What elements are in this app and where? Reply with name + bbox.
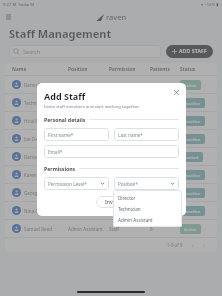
staticText: Add Staff	[44, 90, 86, 102]
button[interactable]: ADD STAFF	[166, 45, 213, 58]
button[interactable]: Admin Assistant	[113, 214, 182, 225]
staticText: Position*	[118, 181, 170, 187]
staticText: Position	[68, 66, 109, 73]
staticText: Admin	[109, 118, 150, 124]
staticText: Inactive	[184, 172, 201, 178]
staticText: 6	[150, 226, 180, 232]
staticText: Technician	[118, 206, 141, 212]
staticText: Name	[12, 66, 68, 73]
staticText: First name*	[48, 132, 105, 138]
button[interactable]: Director	[113, 192, 182, 203]
staticText: Nina Cross	[24, 208, 48, 214]
button[interactable]: First name*	[44, 128, 109, 141]
staticText: Inactive	[184, 118, 201, 124]
button[interactable]: Samuel Reed	[5, 220, 217, 237]
staticText: Director	[118, 195, 136, 201]
staticText: raven	[106, 12, 127, 22]
button[interactable]: Last name*	[114, 128, 179, 141]
staticText: 1-9 of 9	[167, 242, 183, 248]
button[interactable]: Demo Raven Health	[5, 76, 217, 93]
staticText: Staff	[109, 208, 150, 214]
staticText: Permissions	[44, 165, 76, 172]
staticText: Search	[23, 48, 41, 55]
staticText: Samuel Reed	[24, 226, 53, 232]
staticText: Director	[68, 118, 109, 124]
staticText: 9	[150, 190, 180, 196]
staticText: Joe Daniels	[24, 136, 48, 142]
button[interactable]: Search	[9, 45, 161, 58]
button[interactable]: Karen Patel	[5, 166, 217, 183]
staticText: Technician One	[24, 100, 57, 106]
staticText: Karen Patel	[24, 172, 49, 178]
button[interactable]: Denise Avery	[5, 148, 217, 165]
staticText: Administrator	[68, 82, 109, 88]
staticText: Admin	[109, 190, 150, 196]
staticText: Permission Level*	[48, 181, 100, 187]
staticText: Email*	[48, 149, 175, 155]
staticText: Staff	[109, 172, 150, 178]
button[interactable]: Joe Daniels	[5, 130, 217, 147]
staticText: Technician	[68, 100, 109, 106]
staticText: Permission	[109, 66, 150, 73]
staticText: Admin Assistant	[68, 226, 109, 232]
staticText: Staff Management	[9, 26, 112, 41]
staticText: Admin Assistant	[68, 154, 109, 160]
staticText: ADD STAFF	[179, 48, 207, 55]
staticText: Inactive	[184, 100, 201, 106]
button[interactable]: Email*	[44, 145, 179, 158]
button[interactable]: Permission Level*	[44, 177, 109, 190]
staticText: Inactive	[184, 136, 201, 142]
staticText: Technician	[68, 172, 109, 178]
staticText: Admin Assistant	[118, 217, 153, 223]
staticText: 12	[150, 82, 180, 88]
staticText: 2	[150, 172, 180, 178]
staticText: Invite	[105, 199, 119, 206]
staticText: Invited	[184, 154, 199, 160]
staticText: Technician	[68, 136, 109, 142]
staticText: 7	[150, 154, 180, 160]
staticText: Inactive	[184, 208, 201, 214]
staticText: Denise Avery	[24, 154, 53, 160]
staticText: Staff	[109, 100, 150, 106]
button[interactable]: Position*	[114, 177, 179, 190]
button[interactable]: George Mills	[5, 184, 217, 201]
button[interactable]: Close	[173, 89, 180, 96]
button[interactable]: Next page	[200, 242, 207, 249]
button[interactable]: Nina Cross	[5, 202, 217, 219]
staticText: ▾ • 58% ▮	[201, 2, 219, 8]
button[interactable]: Previous page	[189, 242, 196, 249]
staticText: Staff	[109, 226, 150, 232]
staticText: Active	[184, 226, 197, 232]
staticText: Staff	[109, 154, 150, 160]
staticText: 5	[150, 118, 180, 124]
button[interactable]: Technician	[113, 203, 182, 214]
button[interactable]: Invite	[96, 196, 128, 208]
staticText: Last name*	[118, 132, 175, 138]
staticText: Staff	[109, 136, 150, 142]
staticText: Personal details	[44, 116, 86, 123]
staticText: Demo Raven Health	[24, 82, 67, 88]
staticText: Inactive	[184, 190, 201, 196]
staticText: 3	[150, 136, 180, 142]
staticText: Admin	[109, 82, 150, 88]
staticText: Invite staff members and start working t…	[44, 104, 140, 110]
staticText: Status	[180, 66, 210, 73]
staticText: 9:27 M Sadia M	[3, 2, 35, 8]
staticText: George Mills	[24, 190, 52, 196]
button[interactable]: Menu	[4, 13, 12, 21]
staticText: Patients	[150, 66, 180, 73]
staticText: Active	[184, 82, 197, 88]
button[interactable]: Technician One	[5, 94, 217, 111]
button[interactable]: Hiral Bhatt	[5, 112, 217, 129]
staticText: Hiral Bhatt	[24, 118, 48, 124]
